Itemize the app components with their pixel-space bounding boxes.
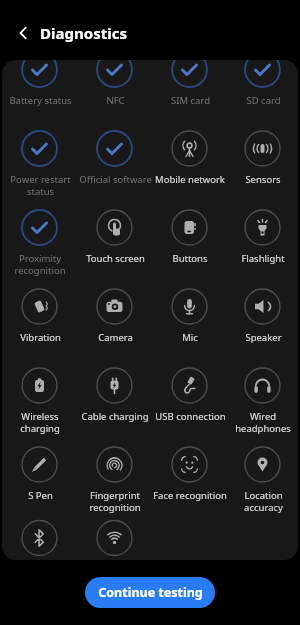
button[interactable]: Camera	[77, 288, 152, 344]
staticText: Location accuracy	[244, 489, 283, 514]
staticText: SD card	[246, 94, 281, 107]
button[interactable]: Touch screen	[77, 209, 152, 265]
button[interactable]: Battery status	[2, 60, 77, 107]
staticText: Power restart status	[10, 173, 71, 198]
button[interactable]: Location accuracy	[227, 446, 298, 514]
staticText: Fingerprint recognition	[89, 489, 141, 514]
button[interactable]: Vibration	[2, 288, 77, 344]
button[interactable]: USB connection	[152, 367, 227, 423]
staticText: Mic	[182, 331, 198, 344]
staticText: SIM card	[171, 94, 210, 107]
staticText: Touch screen	[86, 252, 145, 265]
button[interactable]: Speaker	[227, 288, 298, 344]
button[interactable]: SD card	[227, 60, 298, 107]
staticText: USB connection	[155, 410, 226, 423]
staticText: Continue testing	[98, 584, 203, 601]
button[interactable]: NFC	[77, 60, 152, 107]
button[interactable]: Cable charging	[77, 367, 152, 423]
staticText: Wired headphones	[235, 410, 291, 435]
staticText: Camera	[98, 331, 133, 344]
button[interactable]: Power restart status	[2, 130, 77, 198]
button[interactable]: Wired headphones	[227, 367, 298, 435]
button[interactable]: Flashlight	[227, 209, 298, 265]
staticText: Diagnostics	[40, 23, 127, 43]
staticText: NFC	[106, 94, 125, 107]
staticText: Battery status	[9, 94, 72, 107]
button[interactable]: Bluetooth	[2, 525, 77, 551]
staticText: Speaker	[245, 331, 282, 344]
button[interactable]: Mic	[152, 288, 227, 344]
staticText: Buttons	[172, 252, 208, 265]
staticText: Proximity recognition	[14, 252, 66, 277]
button[interactable]: Sensors	[227, 130, 298, 186]
button[interactable]: Fingerprint recognition	[77, 446, 152, 514]
button[interactable]: Buttons	[152, 209, 227, 265]
staticText: Official software	[79, 173, 152, 186]
button[interactable]: Proximity recognition	[2, 209, 77, 277]
staticText: Flashlight	[241, 252, 285, 265]
staticText: S Pen	[28, 489, 53, 502]
button[interactable]: Official software	[77, 130, 152, 186]
staticText: Face recognition	[153, 489, 227, 502]
button[interactable]: Mobile network	[152, 130, 227, 186]
staticText: Mobile network	[155, 173, 225, 186]
button[interactable]: SIM card	[152, 60, 227, 107]
button[interactable]: Wi-Fi	[77, 525, 152, 551]
staticText: Cable charging	[81, 410, 149, 423]
button[interactable]: S Pen	[2, 446, 77, 502]
staticText: Sensors	[245, 173, 281, 186]
staticText: Vibration	[20, 331, 61, 344]
button[interactable]: Wireless charging	[2, 367, 77, 435]
staticText: Wireless charging	[20, 410, 60, 435]
button[interactable]	[12, 21, 36, 45]
button[interactable]: Face recognition	[152, 446, 227, 502]
button[interactable]: Continue testing	[85, 577, 215, 608]
